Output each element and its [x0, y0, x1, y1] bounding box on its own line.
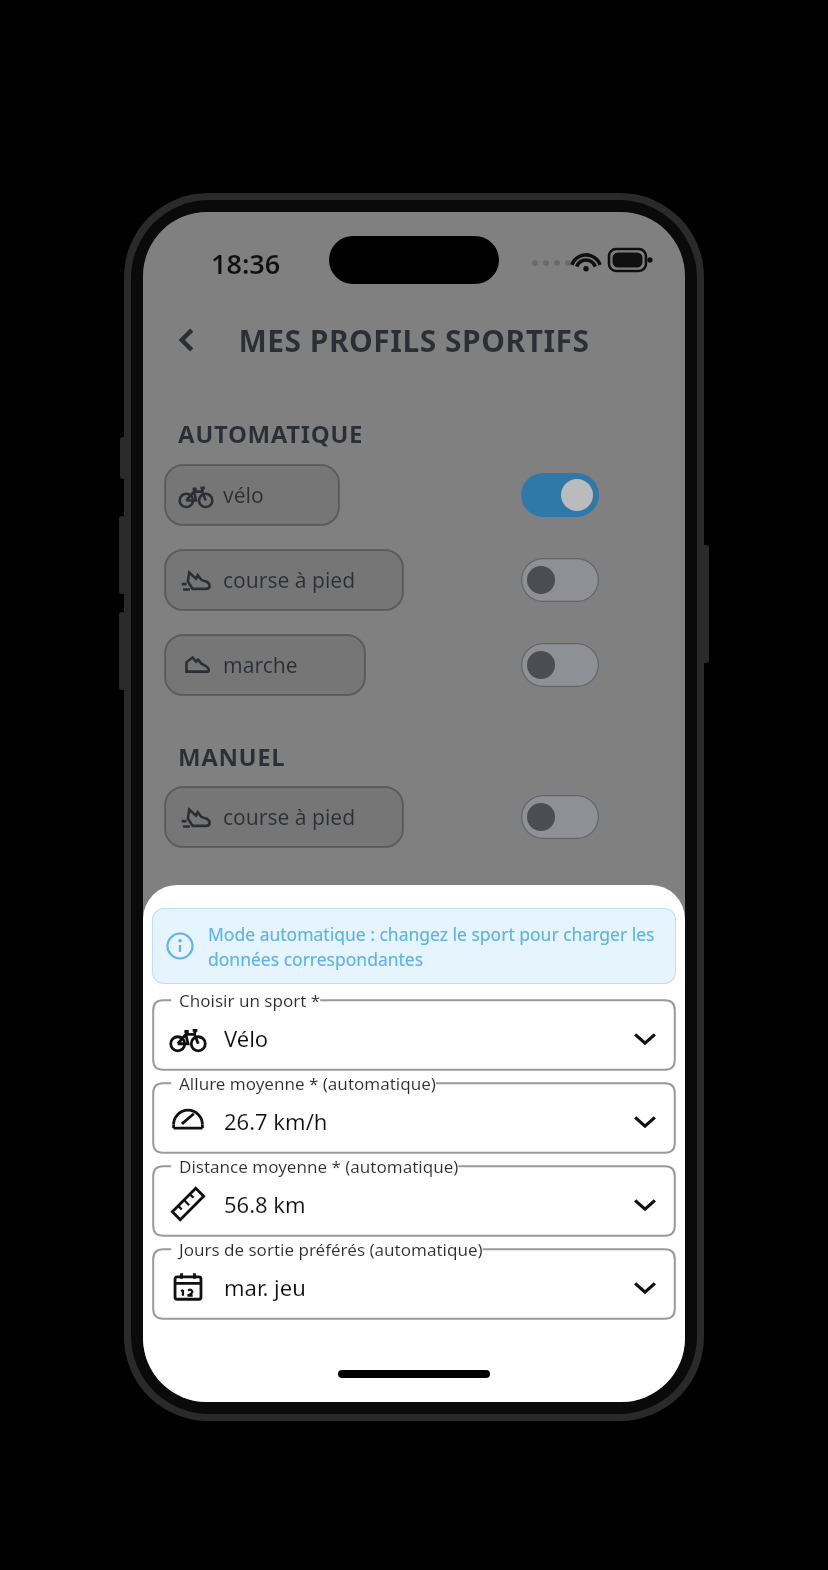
staticText: 18:36	[211, 245, 281, 282]
button[interactable]: Retour	[159, 312, 215, 368]
button[interactable]: course à pied	[165, 787, 403, 847]
staticText: MANUEL	[178, 740, 286, 773]
button[interactable]: Jours de sortie préférés (automatique)	[152, 1248, 676, 1320]
staticText: Choisir un sport *	[179, 989, 321, 1012]
staticText: Mode automatique : changez le sport pour…	[208, 922, 662, 971]
button[interactable]: Désactivé	[521, 558, 599, 602]
button[interactable]: Choisir un sport *	[152, 999, 676, 1071]
staticText: course à pied	[223, 566, 356, 595]
staticText: Allure moyenne * (automatique)	[179, 1072, 436, 1095]
staticText: 26.7 km/h	[224, 1106, 328, 1136]
button[interactable]: Allure moyenne * (automatique)	[152, 1082, 676, 1154]
staticText: mar. jeu	[224, 1272, 306, 1302]
staticText: Vélo	[224, 1023, 269, 1053]
button[interactable]: Mode automatique : changez le sport pour…	[152, 908, 676, 984]
button[interactable]: Activé	[521, 473, 599, 517]
button[interactable]: course à pied	[165, 550, 403, 610]
button[interactable]: marche	[165, 635, 365, 695]
button[interactable]: Désactivé	[521, 643, 599, 687]
button[interactable]: vélo	[165, 465, 339, 525]
staticText: Distance moyenne * (automatique)	[179, 1155, 459, 1178]
staticText: MES PROFILS SPORTIFS	[143, 320, 685, 361]
button[interactable]: Distance moyenne * (automatique)	[152, 1165, 676, 1237]
staticText: marche	[223, 651, 298, 680]
staticText: AUTOMATIQUE	[178, 417, 364, 450]
staticText: 56.8 km	[224, 1189, 306, 1219]
staticText: course à pied	[223, 803, 356, 832]
staticText: Jours de sortie préférés (automatique)	[179, 1238, 483, 1261]
button[interactable]: Désactivé	[521, 795, 599, 839]
staticText: vélo	[223, 481, 264, 510]
